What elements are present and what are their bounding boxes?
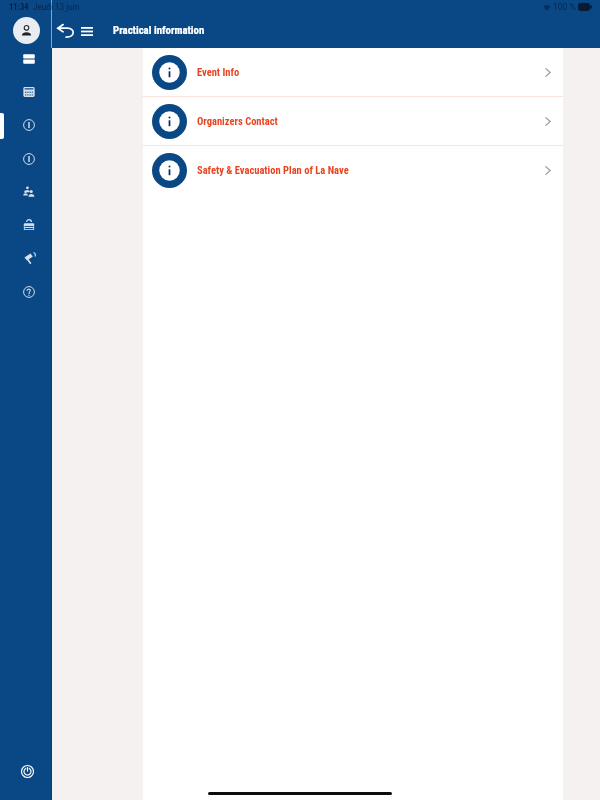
button[interactable]: Menu	[74, 19, 99, 44]
button[interactable]: Back	[52, 17, 79, 44]
button[interactable]: Practical information	[13, 143, 45, 175]
button[interactable]: Help	[13, 276, 45, 308]
button[interactable]: Event Info	[143, 48, 563, 96]
button[interactable]: Log out	[12, 756, 42, 786]
staticText: 11:34	[9, 2, 29, 12]
staticText: Safety & Evacuation Plan of La Nave	[197, 164, 349, 176]
button[interactable]: News	[13, 242, 45, 274]
button[interactable]: Organizers Contact	[143, 97, 563, 145]
button[interactable]: Event info	[13, 109, 45, 141]
button[interactable]: Profile	[13, 17, 40, 44]
staticText: Organizers Contact	[197, 115, 278, 127]
staticText: 100 %	[553, 2, 576, 12]
button[interactable]: Agenda	[13, 43, 45, 75]
staticText: Jeudi 13 juin	[33, 2, 80, 12]
button[interactable]: Participants	[13, 176, 45, 208]
button[interactable]: Safety & Evacuation Plan of La Nave	[143, 146, 563, 194]
button[interactable]: Exhibitors	[13, 209, 45, 241]
staticText: Practical information	[113, 24, 205, 37]
staticText: Event Info	[197, 66, 240, 78]
button[interactable]: Calendar	[13, 76, 45, 108]
